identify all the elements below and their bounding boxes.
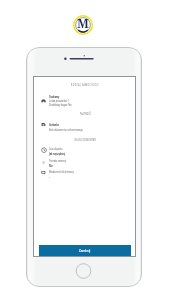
button[interactable]: Car type <box>41 98 46 103</box>
staticText: Jak najszybciej <box>49 152 65 156</box>
staticText: Przewóz zwierząt <box>49 159 66 163</box>
staticText: Zamknij <box>79 249 91 253</box>
staticText: Dodatkowy bagaż: Nie <box>49 103 72 107</box>
button[interactable]: Zamknij <box>39 245 131 256</box>
button[interactable]: Payment <box>41 122 46 127</box>
staticText: Liczba pasażerów: 1 <box>49 99 69 103</box>
staticText: Wiadomość dla kierowcy <box>49 170 74 174</box>
staticText: Gotówka <box>49 123 59 127</box>
button[interactable]: Arrival time <box>41 147 47 153</box>
staticText: - <box>49 175 50 179</box>
button[interactable]: Pets <box>41 160 46 165</box>
staticText: RODZAJ SAMOCHODU <box>71 83 99 86</box>
button[interactable]: Message for driver <box>41 170 46 175</box>
staticText: M <box>77 15 89 32</box>
staticText: Osobowy <box>49 95 59 99</box>
staticText: USŁUGI DODATKOWE <box>74 138 96 141</box>
staticText: Brak dokumentu rozliczeniowego <box>49 128 83 132</box>
staticText: Nie <box>49 164 53 168</box>
staticText: PŁATNOŚĆ <box>80 112 91 115</box>
staticText: Czas dojazdu <box>49 147 62 151</box>
